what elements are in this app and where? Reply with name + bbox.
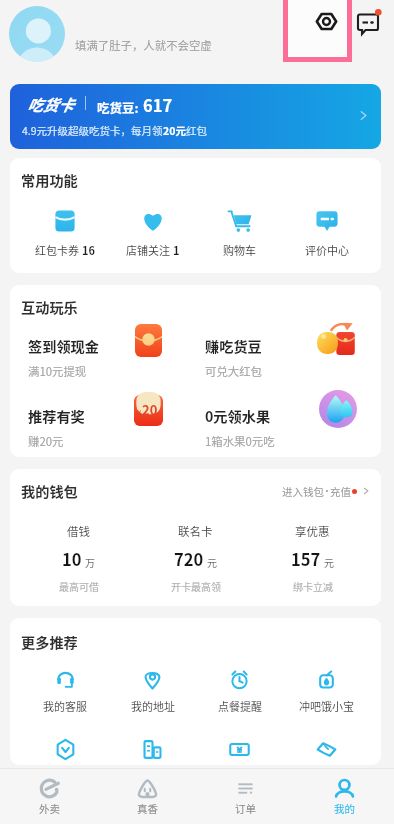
button[interactable]: 0元领水果	[205, 406, 309, 448]
staticText: 借钱	[67, 523, 90, 540]
staticText: 联名卡	[178, 523, 213, 540]
button[interactable]: 点餐提醒	[196, 669, 283, 714]
staticText: 赚吃货豆	[205, 336, 262, 357]
staticText: 开卡最高领	[171, 579, 221, 593]
staticText: 0元领水果	[205, 406, 271, 427]
staticText: 16	[82, 242, 95, 258]
staticText: 购物车	[223, 242, 256, 258]
button[interactable]: 外卖	[0, 769, 98, 824]
staticText: 充值	[330, 484, 351, 499]
staticText: 20元	[163, 123, 186, 138]
staticText: 真香	[137, 801, 158, 816]
button[interactable]: 赚吃货豆	[205, 336, 309, 378]
staticText: 满10元提现	[28, 363, 87, 378]
staticText: 互动玩乐	[21, 297, 78, 318]
staticText: 157	[291, 547, 321, 571]
staticText: 赚20元	[28, 433, 64, 448]
staticText: 最高可借	[59, 579, 99, 593]
staticText: 可兑大红包	[205, 363, 262, 378]
staticText: 我的客服	[43, 698, 87, 714]
button[interactable]	[21, 739, 109, 760]
button[interactable]: 我的	[295, 769, 394, 824]
staticText: 万	[85, 555, 95, 569]
button[interactable]: 评价中心	[283, 208, 370, 258]
staticText: 720	[174, 547, 204, 571]
staticText: 元	[324, 555, 334, 569]
staticText: 冲吧饿小宝	[299, 698, 354, 714]
staticText: 吃货卡	[27, 93, 74, 115]
button[interactable]: 推荐有奖	[28, 406, 132, 448]
button[interactable]: 冲吧饿小宝	[283, 669, 370, 714]
button[interactable]: 真香	[98, 769, 196, 824]
staticText: 1	[173, 242, 180, 258]
staticText: 4.9元升级超级吃货卡，每月领	[22, 123, 163, 138]
button[interactable]: Avatar	[9, 6, 65, 62]
button[interactable]: 吃货卡	[10, 84, 381, 149]
staticText: 我的钱包	[21, 481, 78, 502]
staticText: 红包卡券	[35, 242, 79, 258]
staticText: 外卖	[39, 801, 60, 816]
button[interactable]	[196, 739, 283, 760]
staticText: 元	[207, 555, 217, 569]
staticText: 我的	[334, 801, 355, 816]
button[interactable]	[109, 739, 196, 760]
staticText: 点餐提醒	[218, 698, 262, 714]
button[interactable]: 我的地址	[109, 669, 196, 714]
button[interactable]: 店铺关注	[109, 208, 196, 258]
button[interactable]: 我的客服	[21, 669, 109, 714]
button[interactable]: Settings	[308, 3, 344, 39]
button[interactable]	[283, 739, 370, 760]
staticText: 我的地址	[131, 698, 175, 714]
button[interactable]: 红包卡券	[21, 208, 109, 258]
staticText: 订单	[235, 801, 256, 816]
staticText: 进入钱包	[282, 484, 324, 499]
staticText: 签到领现金	[28, 336, 99, 357]
button[interactable]: 购物车	[196, 208, 283, 258]
staticText: 红包	[186, 123, 207, 138]
staticText: 评价中心	[305, 242, 349, 258]
staticText: 填满了肚子，人就不会空虚	[75, 37, 212, 54]
staticText: 吃货豆:	[97, 98, 139, 116]
staticText: 10	[62, 547, 82, 571]
staticText: 绑卡立减	[293, 579, 333, 593]
staticText: 20	[142, 400, 158, 419]
staticText: 617	[143, 93, 173, 117]
staticText: 享优惠	[295, 523, 330, 540]
staticText: 常用功能	[21, 170, 78, 191]
button[interactable]: 进入钱包	[282, 483, 370, 499]
button[interactable]: 借钱	[20, 523, 137, 593]
button[interactable]: 联名卡	[137, 523, 254, 593]
button[interactable]: 订单	[196, 769, 295, 824]
staticText: 推荐有奖	[28, 406, 85, 427]
button[interactable]: Messages	[345, 0, 385, 40]
button[interactable]: 享优惠	[254, 523, 371, 593]
staticText: 更多推荐	[21, 632, 78, 653]
button[interactable]: 签到领现金	[28, 336, 132, 378]
staticText: 1箱水果0元吃	[205, 433, 275, 448]
staticText: 店铺关注	[126, 242, 170, 258]
staticText: ¥	[137, 408, 142, 418]
